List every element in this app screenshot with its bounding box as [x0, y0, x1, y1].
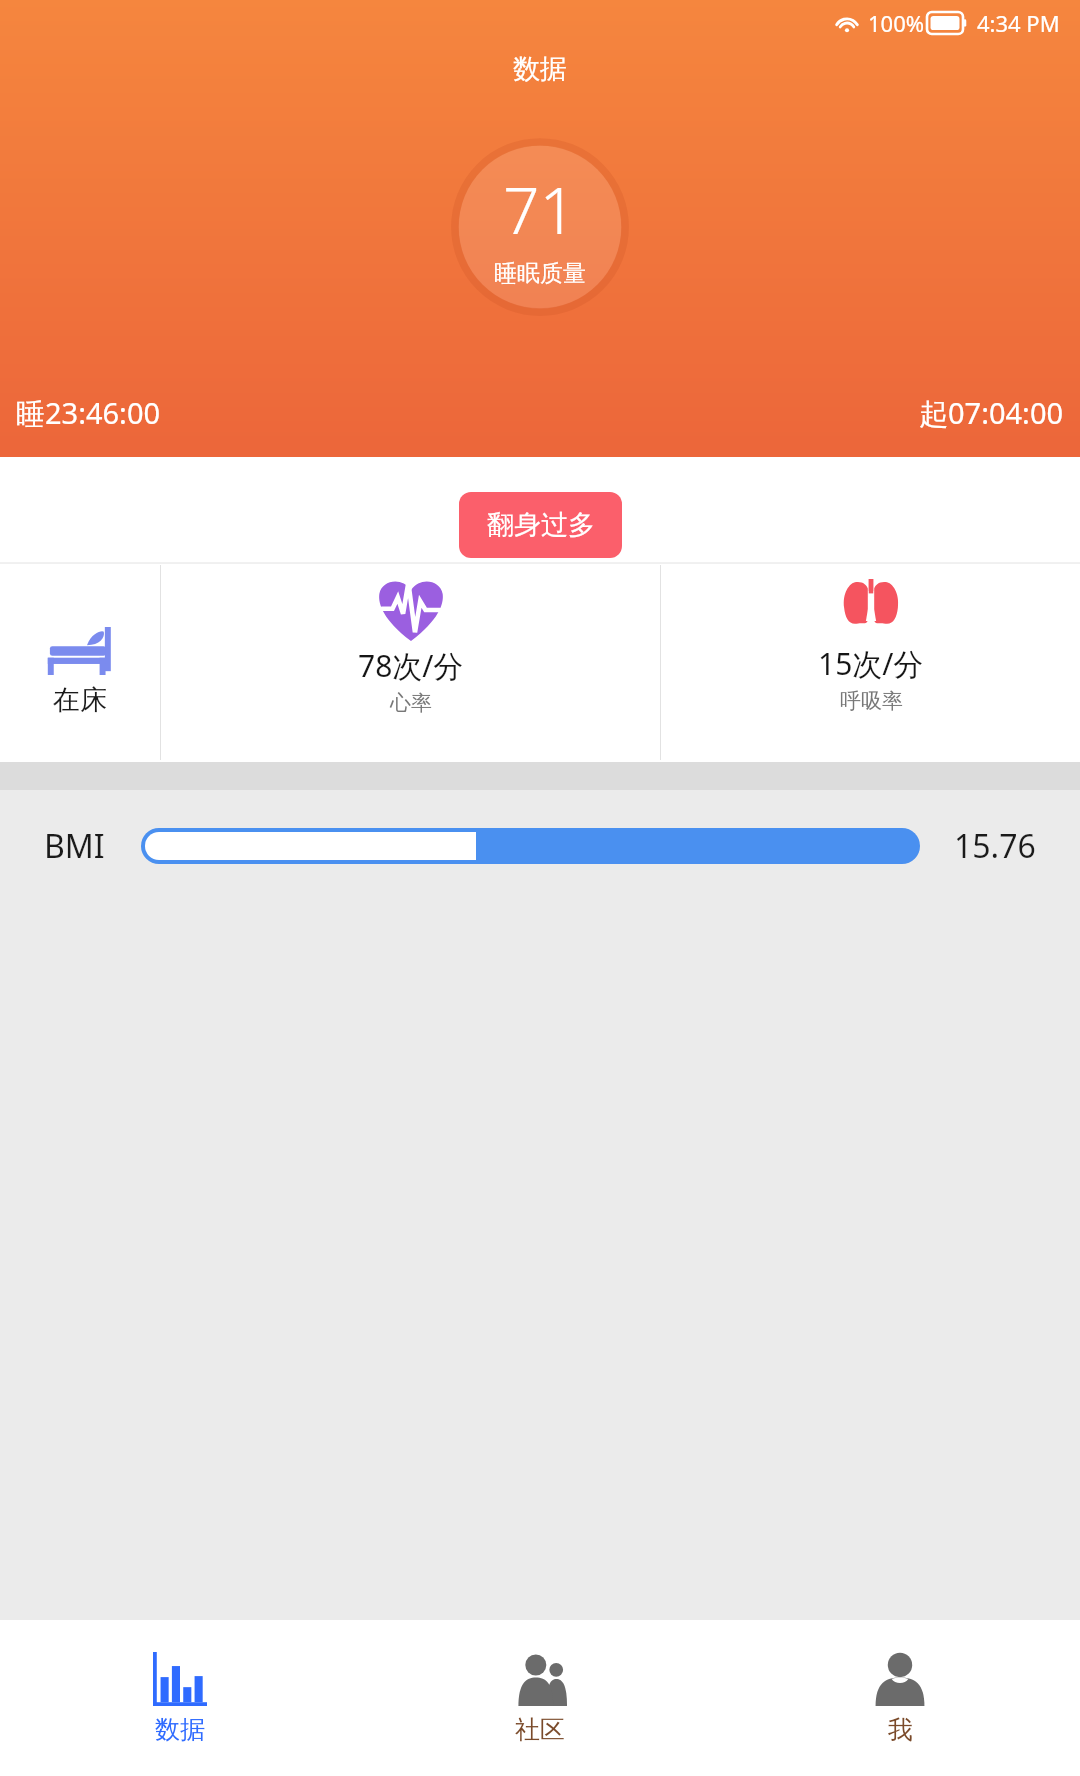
button[interactable]: Community: [360, 1620, 720, 1776]
button[interactable]: 翻身过多: [459, 492, 622, 558]
staticText: 数据: [513, 52, 567, 86]
staticText: 100%: [868, 8, 925, 38]
staticText: 15次/分: [818, 643, 924, 684]
staticText: 起07:04:00: [919, 393, 1064, 433]
staticText: 睡眠质量: [494, 259, 586, 288]
staticText: 在床: [53, 683, 107, 717]
staticText: 78次/分: [358, 645, 464, 686]
button[interactable]: 78次/分: [161, 563, 660, 762]
other: Wi-Fi: [834, 10, 860, 36]
staticText: 我: [888, 1714, 913, 1745]
staticText: 15.76: [954, 824, 1036, 868]
staticText: 71: [503, 166, 577, 253]
staticText: 呼吸率: [840, 688, 903, 714]
staticText: 数据: [155, 1714, 205, 1745]
staticText: 翻身过多: [487, 508, 595, 542]
staticText: 心率: [390, 690, 432, 716]
staticText: 4:34 PM: [977, 8, 1060, 38]
button[interactable]: Me: [720, 1620, 1080, 1776]
button[interactable]: [141, 828, 920, 864]
button[interactable]: 在床: [0, 563, 160, 762]
staticText: 睡23:46:00: [16, 393, 161, 433]
staticText: 社区: [515, 1714, 565, 1745]
other: Battery: [927, 12, 967, 34]
button[interactable]: 15次/分: [661, 563, 1080, 762]
button[interactable]: Data: [0, 1620, 360, 1776]
staticText: BMI: [44, 824, 105, 868]
